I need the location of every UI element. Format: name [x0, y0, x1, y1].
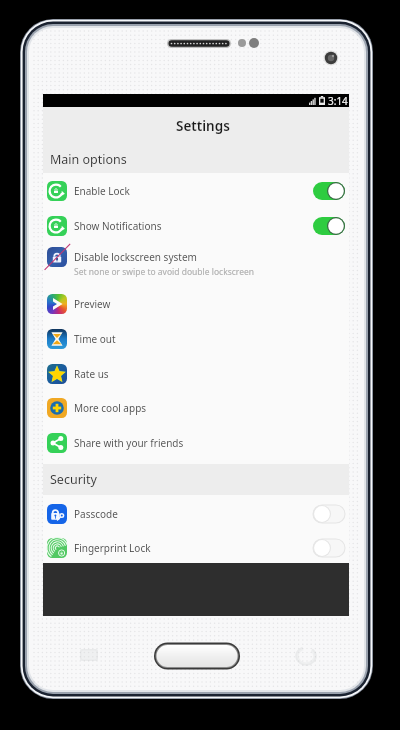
- staticText: Time out: [74, 332, 345, 346]
- staticText: Preview: [74, 297, 345, 311]
- button[interactable]: Disable lockscreen system: [43, 243, 349, 287]
- staticText: Disable lockscreen system: [74, 250, 197, 264]
- staticText: More cool apps: [74, 401, 345, 415]
- button[interactable]: Switch on: [313, 217, 345, 235]
- staticText: Rate us: [74, 367, 345, 381]
- staticText: Show Notifications: [74, 219, 313, 233]
- button[interactable]: Show Notifications: [43, 209, 349, 243]
- button[interactable]: Switch off: [313, 505, 345, 523]
- staticText: Security: [50, 471, 97, 488]
- button[interactable]: Switch off: [313, 539, 345, 557]
- button[interactable]: Passcode: [43, 495, 349, 533]
- button[interactable]: More cool apps: [43, 391, 349, 425]
- button[interactable]: Preview: [43, 287, 349, 321]
- button[interactable]: Switch on: [313, 182, 345, 200]
- staticText: Enable Lock: [74, 184, 313, 198]
- staticText: Fingerprint Lock: [74, 541, 313, 555]
- button[interactable]: Share with your friends: [43, 425, 349, 460]
- button[interactable]: Enable Lock: [43, 173, 349, 209]
- button[interactable]: Fingerprint Lock: [43, 533, 349, 563]
- staticText: Passcode: [74, 507, 313, 521]
- staticText: Main options: [50, 151, 127, 168]
- staticText: Settings: [176, 117, 230, 135]
- staticText: Share with your friends: [74, 436, 345, 450]
- staticText: 3:14: [328, 94, 348, 107]
- staticText: Set none or swipe to avoid double locksc…: [74, 266, 255, 278]
- button[interactable]: Time out: [43, 321, 349, 356]
- button[interactable]: Rate us: [43, 356, 349, 391]
